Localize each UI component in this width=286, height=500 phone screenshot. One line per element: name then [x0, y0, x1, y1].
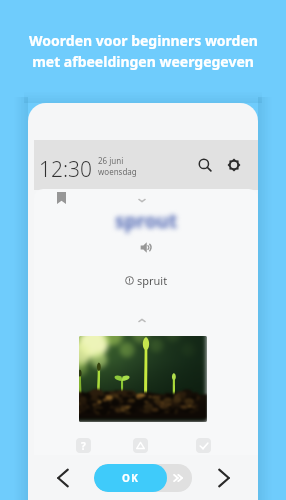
staticText: ? [81, 439, 86, 453]
button[interactable]: Next [211, 465, 237, 491]
staticText: sprout [115, 208, 178, 234]
button[interactable]: OK [94, 464, 192, 492]
staticText: spruit [137, 273, 168, 288]
button[interactable]: Bookmark [57, 192, 66, 204]
staticText: 12:30 [39, 155, 93, 184]
staticText: 26 juni [98, 155, 124, 166]
button[interactable]: Settings [223, 154, 245, 176]
staticText: Woorden voor beginners worden [29, 31, 258, 50]
button[interactable] [133, 438, 148, 453]
button[interactable] [196, 438, 211, 453]
button[interactable]: Collapse [135, 196, 149, 205]
button[interactable]: Play pronunciation [140, 241, 153, 254]
button[interactable]: Expand [135, 316, 149, 325]
staticText: woensdag [98, 166, 137, 177]
button[interactable]: Search [194, 154, 216, 176]
button[interactable]: ? [76, 438, 91, 453]
button[interactable]: Previous [50, 465, 76, 491]
staticText: OK [122, 471, 140, 485]
staticText: met afbeeldingen weergegeven [32, 52, 254, 71]
